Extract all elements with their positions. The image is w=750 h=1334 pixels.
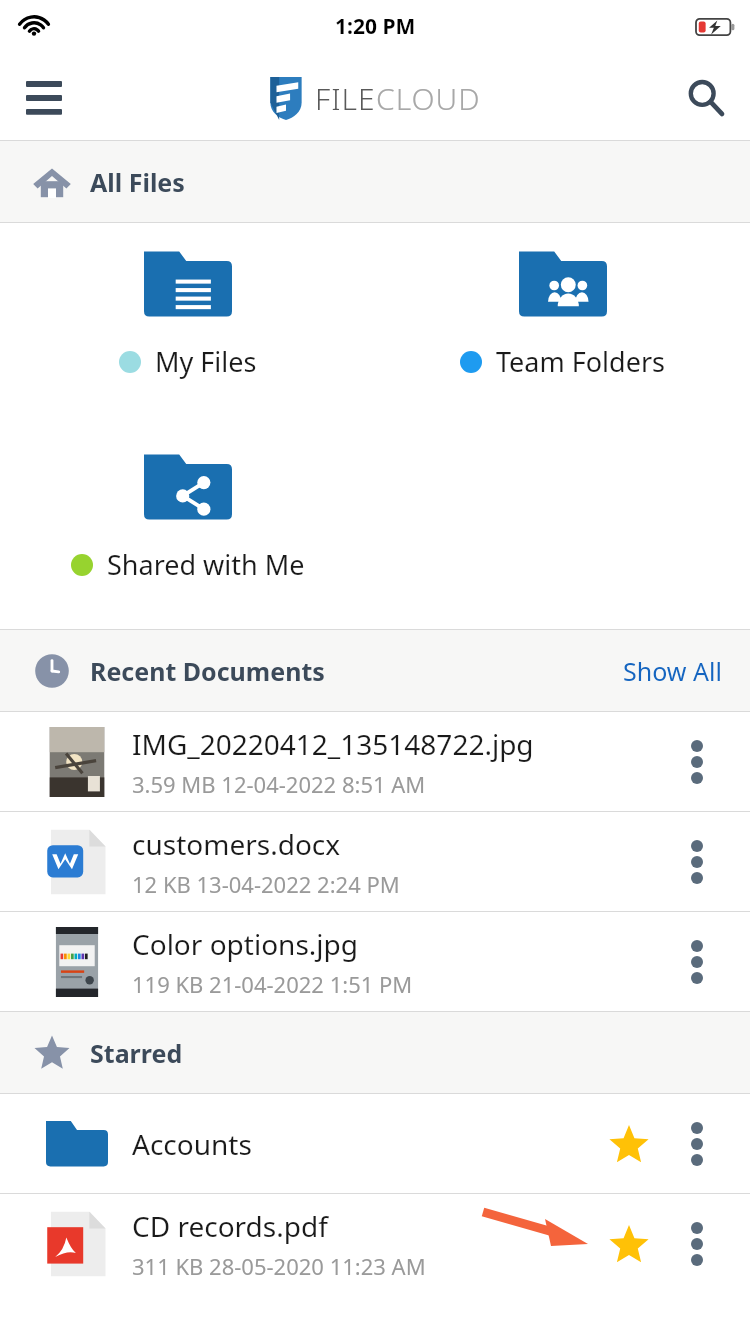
button[interactable]: Color options.jpg: [0, 912, 750, 1011]
button[interactable]: More options: [666, 1113, 728, 1175]
button[interactable]: More options: [666, 931, 728, 993]
button[interactable]: Shared with Me: [0, 426, 375, 629]
button[interactable]: Recent Documents: [0, 630, 750, 711]
button[interactable]: CD records.pdf: [0, 1194, 750, 1293]
staticText: 3.59 MB 12-04-2022 8:51 AM: [132, 769, 426, 799]
staticText: 12 KB 13-04-2022 2:24 PM: [132, 869, 400, 899]
staticText: 311 KB 28-05-2020 11:23 AM: [132, 1251, 426, 1281]
staticText: All Files: [90, 165, 185, 199]
button[interactable]: Starred: [598, 1113, 660, 1175]
button[interactable]: All Files: [0, 141, 750, 222]
staticText: FILE: [315, 78, 376, 119]
button[interactable]: Starred: [0, 1012, 750, 1093]
staticText: Color options.jpg: [132, 925, 358, 963]
staticText: 119 KB 21-04-2022 1:51 PM: [132, 969, 413, 999]
staticText: Shared with Me: [107, 546, 305, 583]
staticText: 1:20 PM: [335, 12, 416, 41]
staticText: CLOUD: [376, 78, 481, 119]
staticText: Recent Documents: [90, 654, 325, 688]
staticText: Starred: [90, 1036, 183, 1070]
button[interactable]: Search: [670, 62, 742, 134]
button[interactable]: More options: [666, 831, 728, 893]
button[interactable]: More options: [666, 731, 728, 793]
staticText: My Files: [155, 343, 257, 380]
staticText: CD records.pdf: [132, 1207, 328, 1245]
staticText: Accounts: [132, 1125, 252, 1163]
button[interactable]: FILE: [269, 76, 481, 120]
button[interactable]: My Files: [0, 223, 375, 426]
button[interactable]: Team Folders: [375, 223, 750, 426]
button[interactable]: IMG_20220412_135148722.jpg: [0, 712, 750, 811]
staticText: customers.docx: [132, 825, 341, 863]
button[interactable]: customers.docx: [0, 812, 750, 911]
button[interactable]: Starred: [598, 1213, 660, 1275]
button[interactable]: Accounts: [0, 1094, 750, 1193]
button[interactable]: Show All: [623, 654, 722, 688]
staticText: IMG_20220412_135148722.jpg: [132, 725, 534, 763]
staticText: Team Folders: [496, 343, 665, 380]
button[interactable]: Menu: [8, 62, 80, 134]
button[interactable]: More options: [666, 1213, 728, 1275]
